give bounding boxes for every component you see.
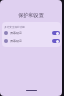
button[interactable]: 屏幕锁定 — [2, 37, 61, 45]
button[interactable]: 屏幕锁定 — [2, 29, 61, 37]
staticText: 屏幕锁定 — [10, 31, 22, 35]
staticText: 保护和设置 — [18, 12, 44, 18]
staticText: 开启安全保护功能 — [4, 25, 25, 28]
staticText: 屏幕锁定 — [10, 39, 22, 43]
